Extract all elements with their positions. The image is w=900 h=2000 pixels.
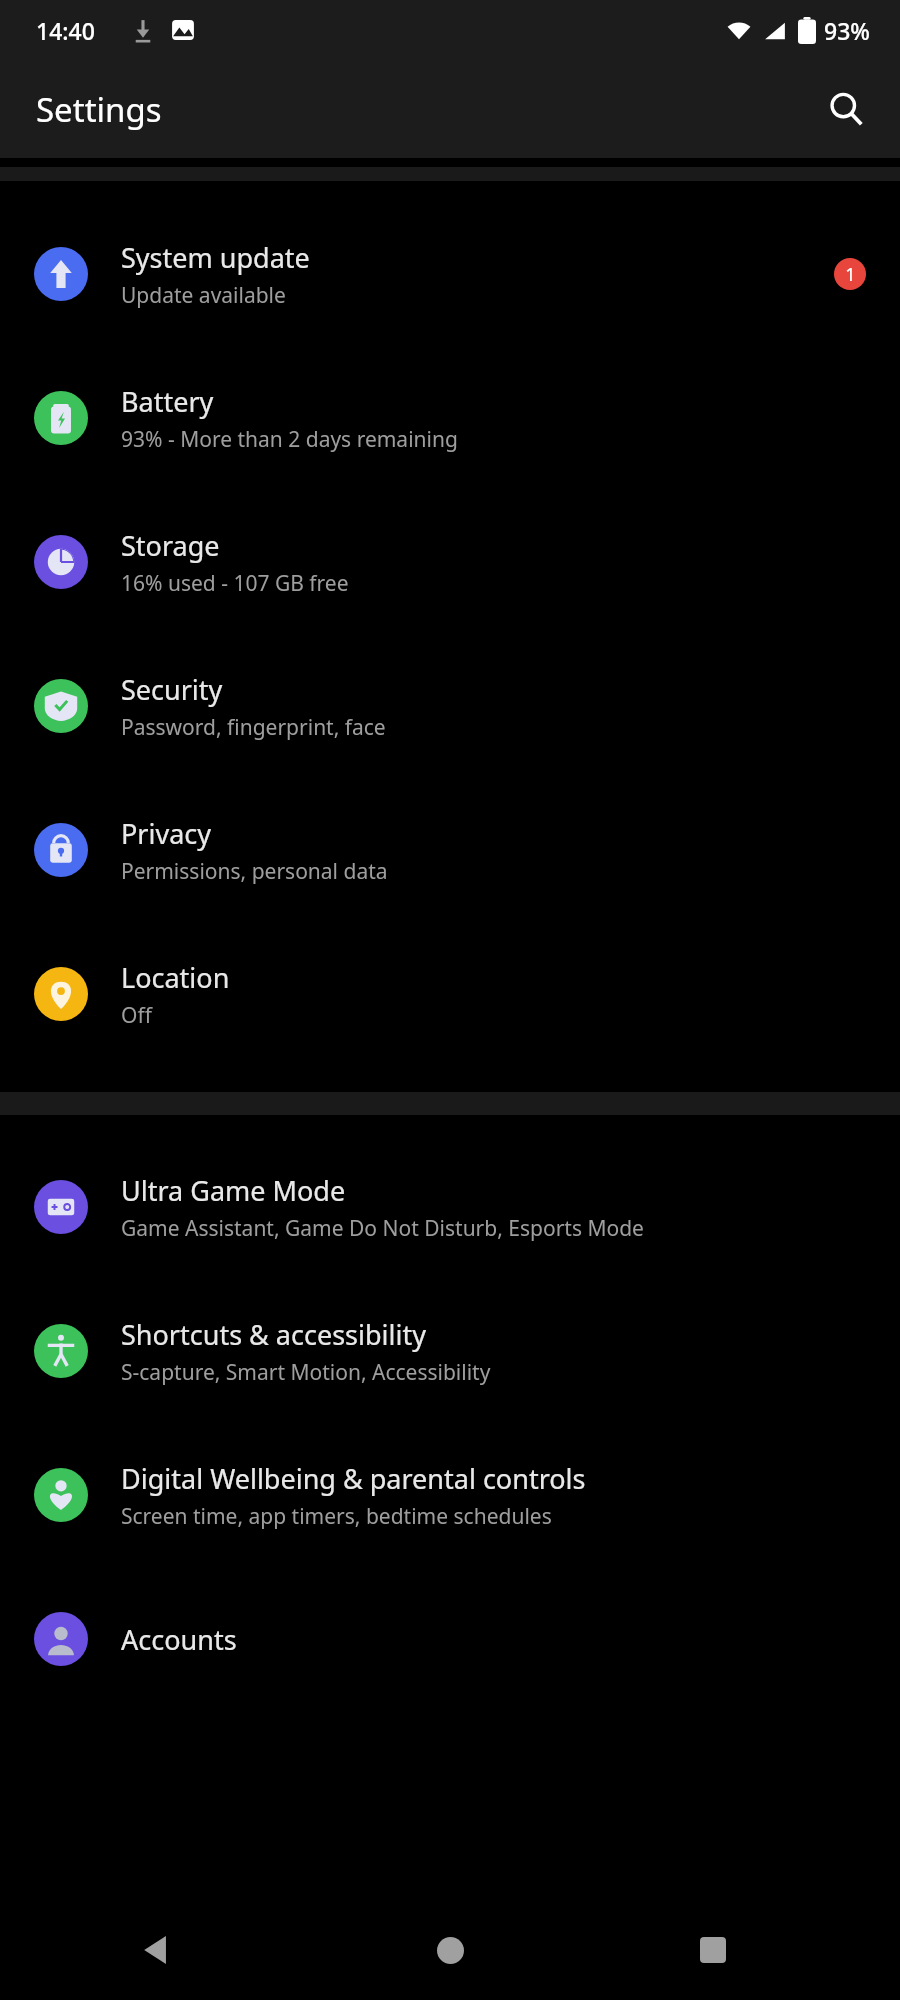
button[interactable]: Search xyxy=(814,77,878,141)
button[interactable]: Home xyxy=(413,1913,487,1987)
staticText: 93% - More than 2 days remaining xyxy=(121,425,458,454)
staticText: Ultra Game Mode xyxy=(121,1172,346,1209)
staticText: Screen time, app timers, bedtime schedul… xyxy=(121,1502,552,1531)
staticText: Location xyxy=(121,959,230,996)
staticText: Storage xyxy=(121,527,220,564)
staticText: 14:40 xyxy=(36,15,95,46)
staticText: Password, fingerprint, face xyxy=(121,713,386,742)
staticText: Settings xyxy=(36,87,162,132)
staticText: 1 xyxy=(845,262,856,287)
staticText: 93% xyxy=(824,15,870,46)
staticText: Accounts xyxy=(121,1621,237,1658)
button[interactable]: Shortcuts & accessibility xyxy=(0,1279,900,1423)
button[interactable]: Ultra Game Mode xyxy=(0,1135,900,1279)
staticText: 16% used - 107 GB free xyxy=(121,569,349,598)
staticText: Privacy xyxy=(121,815,212,852)
staticText: Update available xyxy=(121,281,286,310)
staticText: Security xyxy=(121,671,223,708)
button[interactable]: Back xyxy=(120,1913,194,1987)
button[interactable]: Location xyxy=(0,922,900,1066)
button[interactable]: Recents xyxy=(676,1913,750,1987)
button[interactable]: Battery xyxy=(0,346,900,490)
staticText: Digital Wellbeing & parental controls xyxy=(121,1460,586,1497)
staticText: Off xyxy=(121,1001,152,1030)
button[interactable]: Digital Wellbeing & parental controls xyxy=(0,1423,900,1567)
staticText: Battery xyxy=(121,383,214,420)
button[interactable]: System update xyxy=(0,202,900,346)
button[interactable]: Accounts xyxy=(0,1567,900,1711)
button[interactable]: Storage xyxy=(0,490,900,634)
staticText: System update xyxy=(121,239,310,276)
staticText: S-capture, Smart Motion, Accessibility xyxy=(121,1358,491,1387)
button[interactable]: Privacy xyxy=(0,778,900,922)
button[interactable]: Security xyxy=(0,634,900,778)
staticText: Game Assistant, Game Do Not Disturb, Esp… xyxy=(121,1214,644,1243)
staticText: Permissions, personal data xyxy=(121,857,388,886)
staticText: Shortcuts & accessibility xyxy=(121,1316,427,1353)
